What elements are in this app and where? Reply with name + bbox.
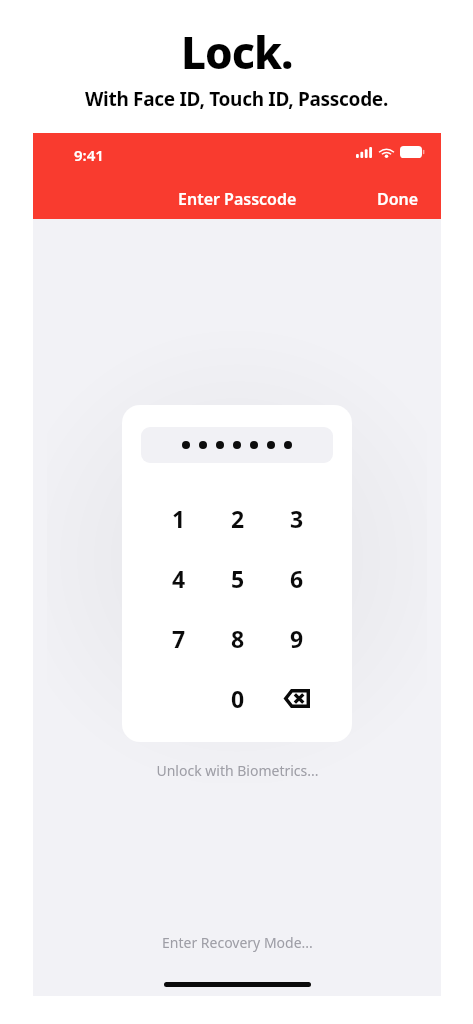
button[interactable]: 2: [208, 488, 267, 548]
staticText: 0: [231, 683, 245, 714]
staticText: 4: [172, 563, 186, 594]
staticText: Done: [377, 188, 419, 210]
button[interactable]: 0: [208, 668, 267, 728]
staticText: Enter Recovery Mode...: [162, 933, 313, 952]
button[interactable]: 9: [267, 608, 326, 668]
staticText: 1: [172, 503, 186, 534]
staticText: Unlock with Biometrics...: [156, 761, 319, 780]
button[interactable]: Enter Recovery Mode...: [152, 929, 323, 956]
staticText: 7: [172, 623, 186, 654]
button[interactable]: [141, 427, 333, 463]
staticText: 5: [231, 563, 245, 594]
button[interactable]: 3: [267, 488, 326, 548]
staticText: 9:41: [74, 145, 104, 165]
staticText: With Face ID, Touch ID, Passcode.: [85, 86, 388, 112]
staticText: 9: [290, 623, 304, 654]
staticText: 2: [231, 503, 245, 534]
button[interactable]: Enter Passcode: [170, 184, 305, 214]
staticText: 8: [231, 623, 245, 654]
staticText: Enter Passcode: [178, 188, 297, 210]
button[interactable]: 5: [208, 548, 267, 608]
staticText: 3: [290, 503, 304, 534]
button[interactable]: 8: [208, 608, 267, 668]
button[interactable]: 4: [149, 548, 208, 608]
button[interactable]: 6: [267, 548, 326, 608]
button[interactable]: Done: [369, 184, 441, 214]
staticText: 6: [290, 563, 304, 594]
button[interactable]: Delete: [267, 668, 326, 728]
button[interactable]: 7: [149, 608, 208, 668]
button[interactable]: 1: [149, 488, 208, 548]
button[interactable]: Unlock with Biometrics...: [148, 758, 327, 783]
staticText: Lock.: [181, 22, 293, 82]
